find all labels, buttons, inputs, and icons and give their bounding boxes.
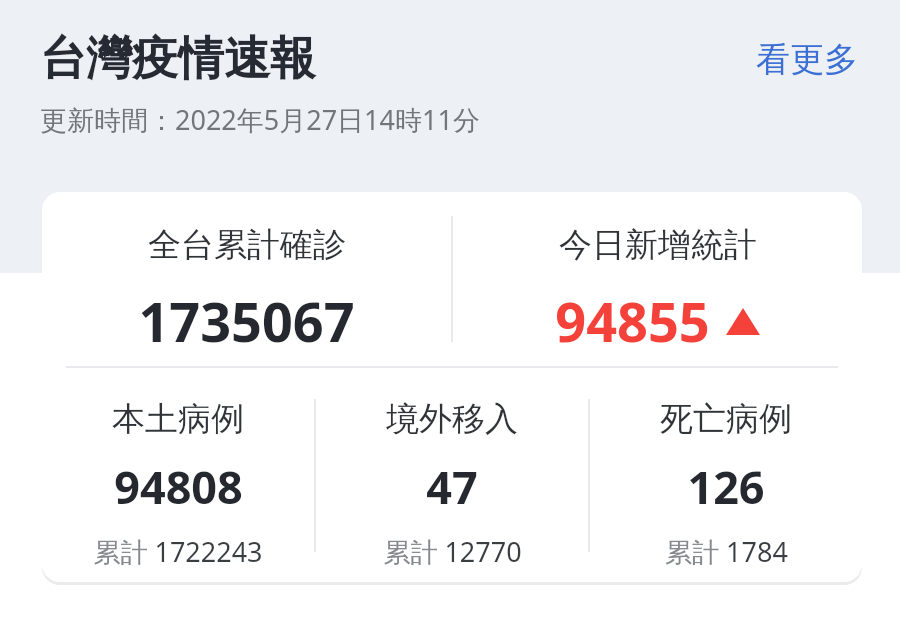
staticText: 1735067: [138, 284, 355, 358]
button[interactable]: 看更多: [754, 34, 860, 85]
staticText: 累計 12770: [383, 533, 522, 570]
staticText: 死亡病例: [660, 398, 792, 440]
staticText: 126: [687, 456, 765, 517]
staticText: 今日新增統計: [559, 224, 757, 266]
button[interactable]: 境外移入: [316, 380, 588, 570]
staticText: 本土病例: [112, 398, 244, 440]
staticText: 累計 1784: [665, 533, 788, 570]
button[interactable]: 本土病例: [42, 380, 314, 570]
staticText: 累計 1722243: [93, 533, 263, 570]
staticText: 94855: [555, 284, 710, 358]
staticText: 台灣疫情速報: [40, 30, 316, 88]
staticText: 47: [426, 456, 478, 517]
staticText: 境外移入: [386, 398, 518, 440]
staticText: 94808: [114, 456, 243, 517]
staticText: 更新時間：2022年5月27日14時11分: [40, 101, 480, 138]
staticText: 看更多: [756, 38, 858, 81]
button[interactable]: 死亡病例: [590, 380, 862, 570]
staticText: 全台累計確診: [148, 224, 346, 266]
